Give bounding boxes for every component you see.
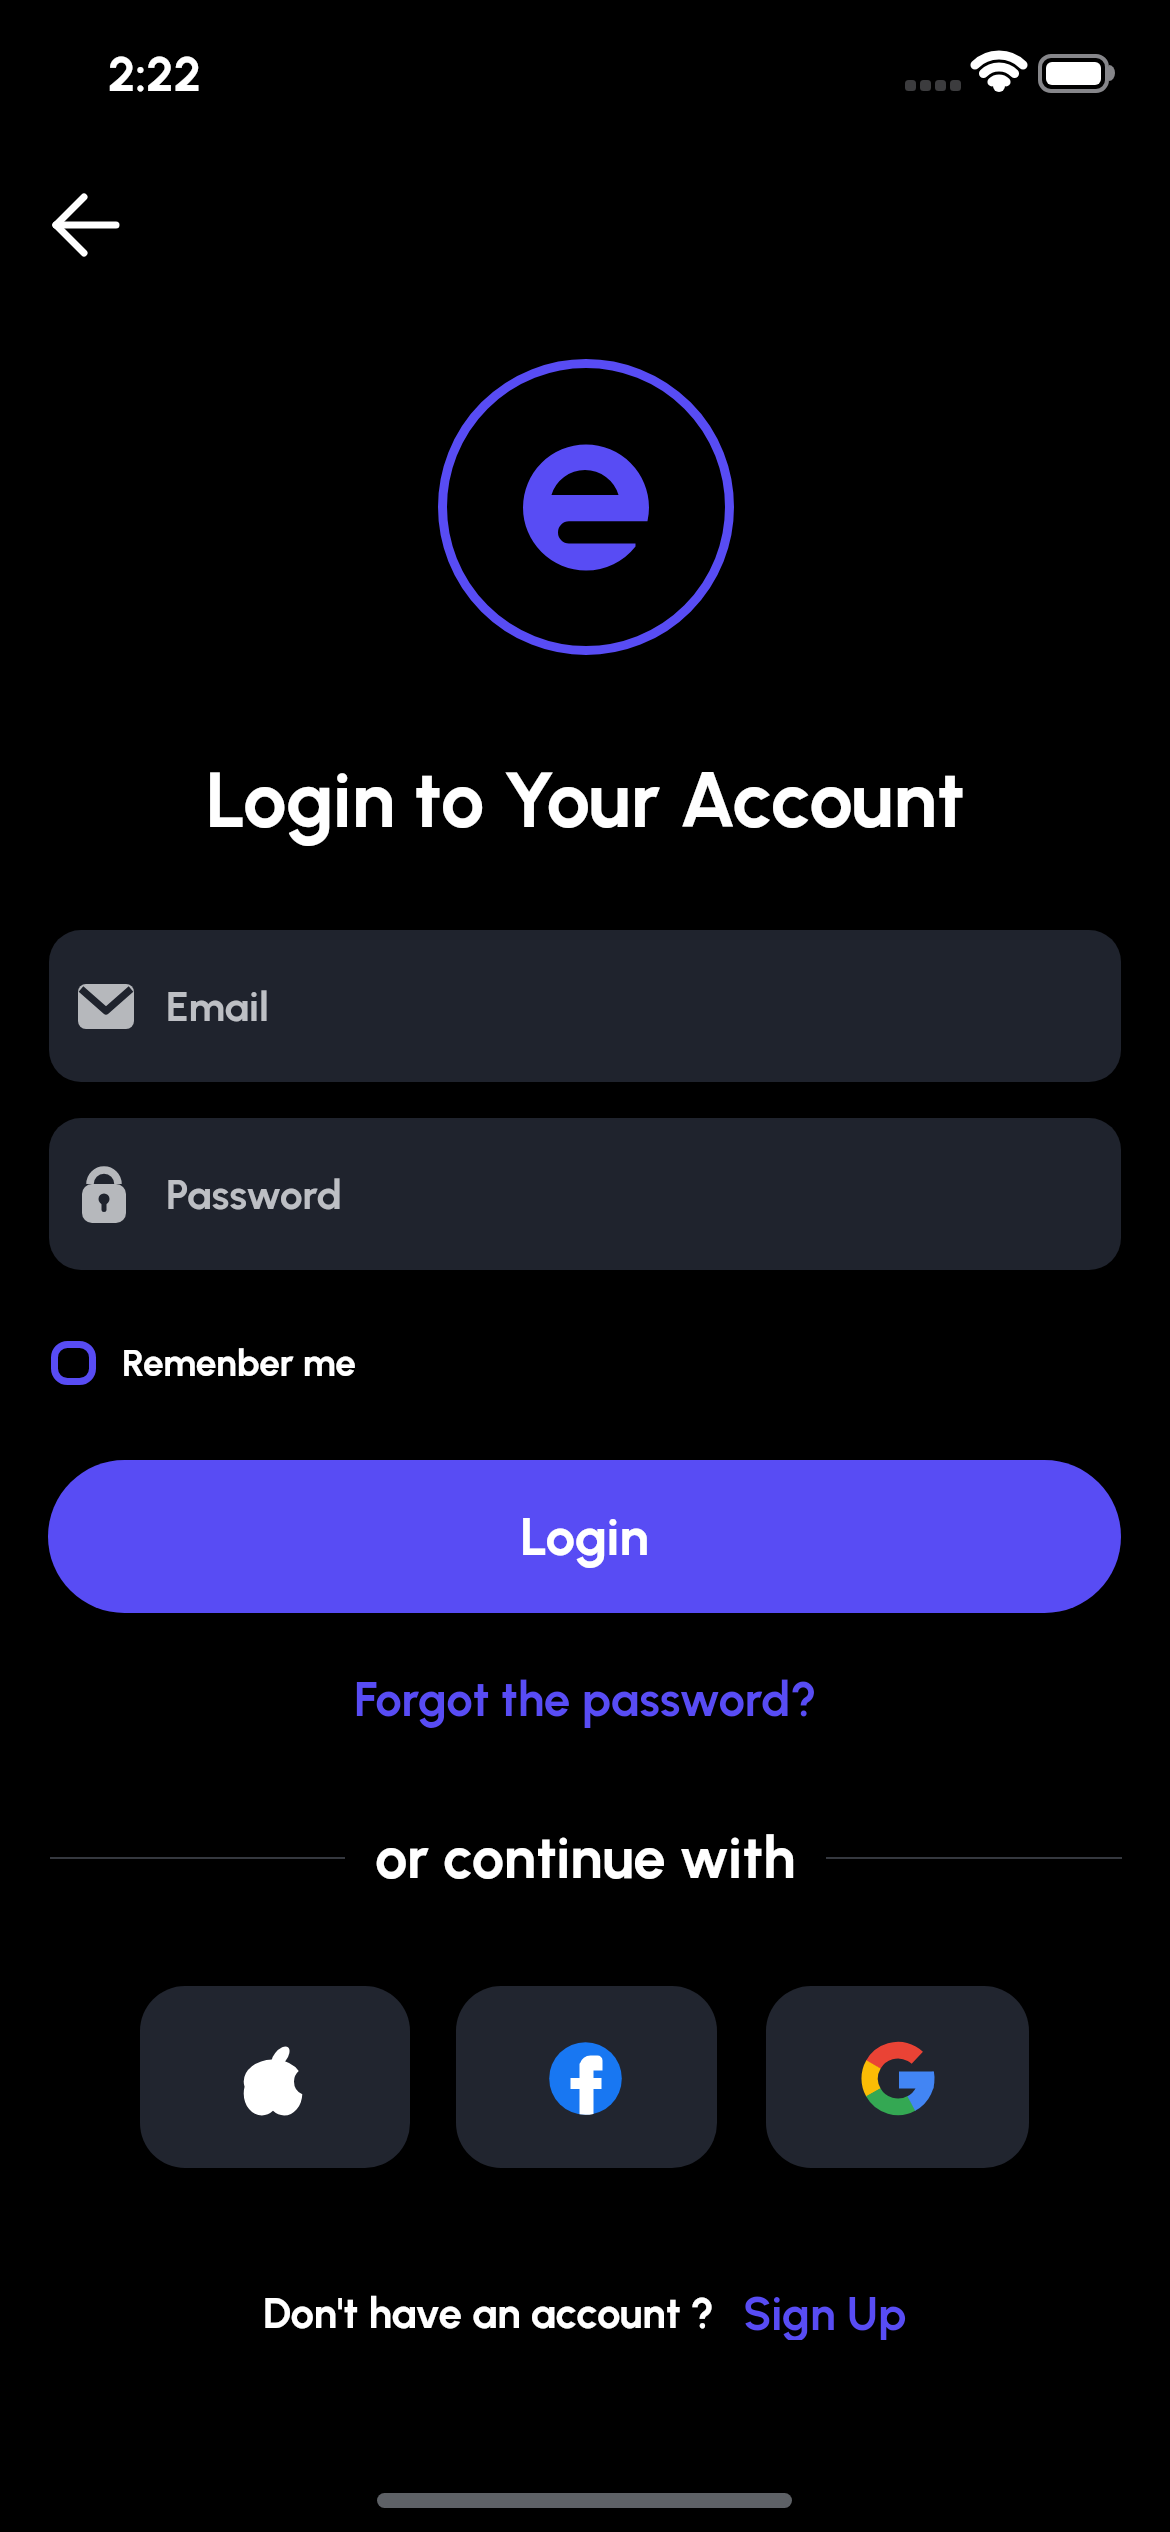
staticText: Password bbox=[166, 1170, 342, 1219]
button[interactable] bbox=[766, 1986, 1029, 2168]
button[interactable]: Forgot the password? bbox=[354, 1671, 817, 1728]
button[interactable]: Email bbox=[49, 930, 1121, 1082]
button[interactable] bbox=[30, 180, 140, 270]
staticText: Remenber me bbox=[122, 1341, 356, 1385]
staticText: Login to Your Account bbox=[0, 753, 1170, 847]
button[interactable] bbox=[456, 1986, 717, 2168]
button[interactable]: Login bbox=[48, 1460, 1121, 1613]
staticText: 2:22 bbox=[108, 45, 202, 103]
staticText: Login bbox=[520, 1505, 649, 1569]
staticText: or continue with bbox=[375, 1823, 796, 1893]
staticText: Don't have an account ? bbox=[263, 2288, 715, 2338]
button[interactable]: Sign Up bbox=[743, 2286, 907, 2340]
button[interactable]: Password bbox=[49, 1118, 1121, 1270]
staticText: Email bbox=[166, 982, 269, 1031]
button[interactable] bbox=[140, 1986, 410, 2168]
button[interactable]: Remenber me bbox=[51, 1341, 356, 1385]
